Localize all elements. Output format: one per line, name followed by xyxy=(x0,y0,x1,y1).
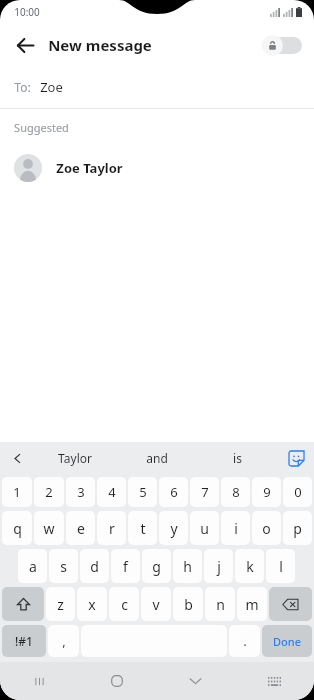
button[interactable]: r xyxy=(97,511,126,545)
staticText: Taylor xyxy=(58,450,92,466)
button[interactable]: 1 xyxy=(2,477,32,507)
button[interactable]: Stickers xyxy=(278,442,314,474)
staticText: s xyxy=(60,557,67,576)
button[interactable]: u xyxy=(190,511,219,545)
button[interactable]: 8 xyxy=(221,477,250,507)
button[interactable]: 0 xyxy=(283,477,312,507)
button[interactable]: Home xyxy=(78,662,156,700)
staticText: Suggested xyxy=(14,120,69,135)
button[interactable]: !#1 xyxy=(2,625,46,657)
staticText: 4 xyxy=(108,483,116,501)
button[interactable]: 4 xyxy=(97,477,126,507)
staticText: u xyxy=(200,519,209,538)
staticText: 1 xyxy=(13,483,21,501)
button[interactable]: v xyxy=(141,587,171,621)
button[interactable]: To: xyxy=(0,66,314,108)
button[interactable]: p xyxy=(283,511,312,545)
button[interactable]: 5 xyxy=(128,477,157,507)
button[interactable]: w xyxy=(34,511,64,545)
button[interactable]: Shift xyxy=(2,587,44,621)
button[interactable]: , xyxy=(48,625,79,657)
staticText: h xyxy=(183,557,192,576)
button[interactable]: Recents xyxy=(0,662,78,700)
staticText: i xyxy=(234,519,238,538)
staticText: Zoe xyxy=(40,78,63,96)
button[interactable]: . xyxy=(229,625,260,657)
staticText: and xyxy=(146,450,168,466)
staticText: o xyxy=(262,519,271,538)
staticText: r xyxy=(109,519,115,538)
button[interactable]: z xyxy=(46,587,75,621)
staticText: , xyxy=(62,632,66,650)
staticText: p xyxy=(293,519,302,538)
button[interactable]: Back xyxy=(8,28,42,62)
button[interactable]: Taylor xyxy=(34,442,116,474)
button[interactable]: b xyxy=(173,587,203,621)
button[interactable]: n xyxy=(205,587,235,621)
button[interactable]: m xyxy=(237,587,267,621)
staticText: d xyxy=(90,557,99,576)
staticText: t xyxy=(140,519,146,538)
button[interactable]: i xyxy=(221,511,250,545)
staticText: . xyxy=(243,632,247,650)
staticText: Zoe Taylor xyxy=(56,159,123,177)
button[interactable]: a xyxy=(18,549,47,583)
button[interactable]: s xyxy=(49,549,78,583)
button[interactable]: q xyxy=(2,511,32,545)
button[interactable]: Previous suggestions xyxy=(0,442,34,474)
staticText: 7 xyxy=(201,483,209,501)
button[interactable]: 2 xyxy=(34,477,64,507)
staticText: b xyxy=(184,595,193,614)
button[interactable]: Done xyxy=(262,625,312,657)
staticText: 9 xyxy=(263,483,271,501)
button[interactable]: k xyxy=(235,549,264,583)
staticText: is xyxy=(233,450,242,466)
staticText: 8 xyxy=(232,483,240,501)
button[interactable]: x xyxy=(77,587,107,621)
staticText: q xyxy=(13,519,22,538)
button[interactable]: is xyxy=(197,442,278,474)
staticText: 3 xyxy=(77,483,85,501)
staticText: 2 xyxy=(45,483,53,501)
button[interactable]: 9 xyxy=(252,477,281,507)
button[interactable]: l xyxy=(266,549,295,583)
button[interactable]: 3 xyxy=(66,477,95,507)
staticText: z xyxy=(57,595,64,614)
staticText: y xyxy=(170,519,178,538)
staticText: f xyxy=(123,557,128,576)
button[interactable]: c xyxy=(109,587,139,621)
button[interactable]: Encryption toggle xyxy=(262,34,302,56)
staticText: 10:00 xyxy=(14,5,40,19)
staticText: c xyxy=(121,595,128,614)
button[interactable]: h xyxy=(173,549,202,583)
staticText: 5 xyxy=(139,483,147,501)
button[interactable]: e xyxy=(66,511,95,545)
button[interactable]: Backspace xyxy=(269,587,312,621)
button[interactable]: y xyxy=(159,511,188,545)
staticText: k xyxy=(246,557,254,576)
staticText: 6 xyxy=(170,483,178,501)
staticText: n xyxy=(216,595,225,614)
staticText: m xyxy=(245,595,259,614)
button[interactable]: j xyxy=(204,549,233,583)
staticText: e xyxy=(77,519,85,538)
button[interactable]: and xyxy=(116,442,197,474)
button[interactable]: t xyxy=(128,511,157,545)
staticText: New message xyxy=(48,35,152,55)
button[interactable]: 7 xyxy=(190,477,219,507)
button[interactable]: d xyxy=(80,549,109,583)
button[interactable]: 6 xyxy=(159,477,188,507)
button[interactable]: o xyxy=(252,511,281,545)
button[interactable]: Switch keyboard xyxy=(235,662,314,700)
staticText: !#1 xyxy=(15,633,33,649)
button[interactable]: Zoe Taylor xyxy=(0,145,314,191)
staticText: j xyxy=(217,557,221,576)
staticText: l xyxy=(279,557,283,576)
staticText: Done xyxy=(273,634,301,649)
staticText: 0 xyxy=(294,483,302,501)
button[interactable]: g xyxy=(142,549,171,583)
button[interactable]: Hide keyboard xyxy=(156,662,235,700)
staticText: x xyxy=(88,595,96,614)
button[interactable]: f xyxy=(111,549,140,583)
